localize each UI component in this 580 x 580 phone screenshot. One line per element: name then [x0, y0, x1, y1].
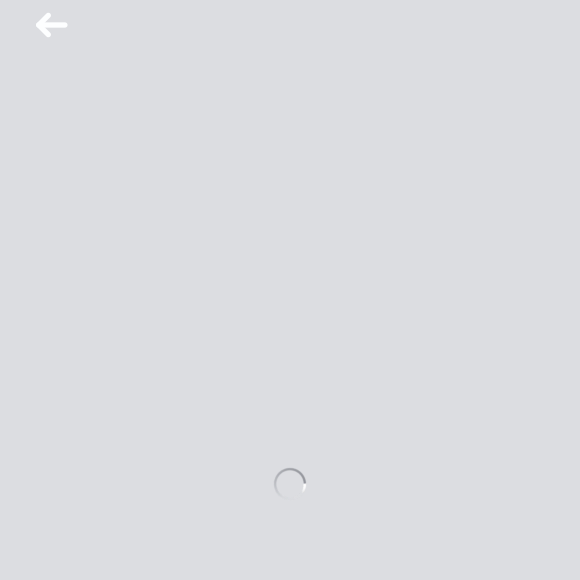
button[interactable]: Back: [0, 0, 82, 51]
